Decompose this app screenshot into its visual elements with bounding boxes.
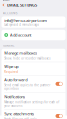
button[interactable]: Manage mailboxes (1, 49, 65, 62)
staticText: Wipe up (4, 64, 18, 69)
staticText: Notifications (4, 94, 25, 99)
button[interactable]: info@hero-x-airport.com (1, 16, 65, 28)
staticText: Auto forward (4, 77, 27, 82)
staticText: Manage mailboxes (4, 50, 37, 56)
button[interactable]: Wipe up (1, 62, 65, 75)
staticText: Add account (10, 32, 31, 38)
button[interactable]: Add account (1, 30, 65, 40)
staticText: Last synced 4 minutes ago (4, 23, 39, 26)
staticText: 9:41 (2, 0, 9, 2)
staticText: Show, hide or reorder mailboxes (4, 57, 50, 60)
staticText: GENERAL (3, 44, 14, 47)
staticText: Required (4, 70, 18, 74)
button[interactable]: Auto forward (1, 76, 65, 92)
staticText: Sync attachments (4, 111, 34, 116)
staticText: Manage notification settings for each of… (4, 100, 59, 107)
staticText: ACCOUNTS (3, 11, 17, 15)
button[interactable]: Sync attachments (1, 109, 65, 119)
button[interactable]: Back (0, 1, 7, 8)
staticText: info@hero-x-airport.com (4, 18, 47, 23)
staticText: Send email copies to the partner ops inb… (4, 83, 50, 91)
staticText: EMAIL SETTINGS (7, 2, 37, 8)
staticText: Fetch files on wifi only (4, 117, 36, 119)
button[interactable]: Notifications (1, 92, 65, 109)
